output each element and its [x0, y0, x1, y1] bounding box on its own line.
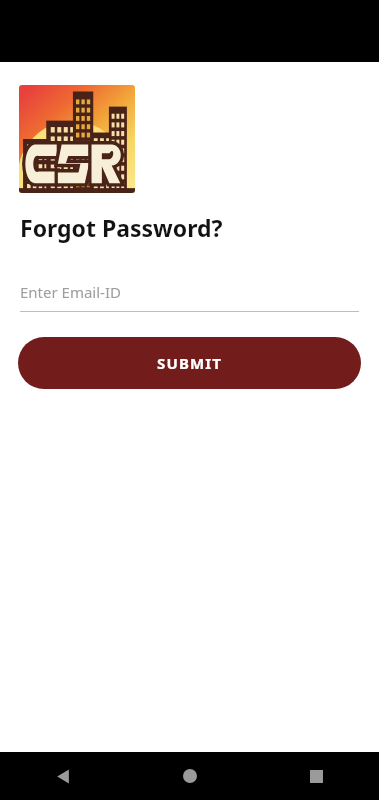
button[interactable]: Enter Email-ID	[20, 282, 359, 312]
button[interactable]: Home	[127, 752, 253, 800]
button[interactable]: Recent apps	[253, 752, 379, 800]
staticText: Enter Email-ID	[20, 282, 121, 302]
button[interactable]: Back	[0, 752, 127, 800]
button[interactable]: SUBMIT	[18, 337, 361, 389]
staticText: Forgot Password?	[20, 212, 223, 243]
staticText: SUBMIT	[157, 353, 222, 373]
